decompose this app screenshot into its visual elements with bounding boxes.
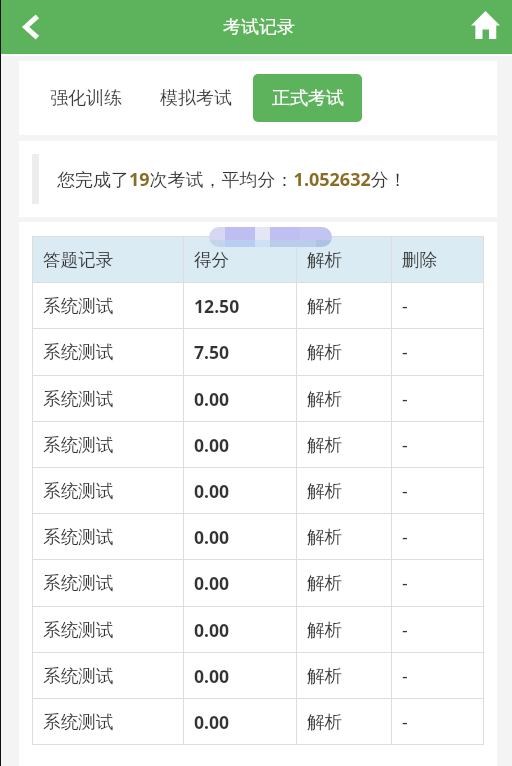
staticText: 解析	[307, 249, 343, 271]
button[interactable]: 模拟考试	[154, 77, 238, 120]
staticText: 12.50	[194, 294, 240, 318]
staticText: 得分	[194, 249, 230, 271]
button[interactable]: 系统测试	[32, 468, 484, 513]
staticText: 0.00	[194, 618, 230, 642]
button[interactable]: 强化训练	[44, 77, 128, 120]
staticText: 您完成了19次考试，平均分：1.052632分！	[57, 167, 407, 192]
staticText: 0.00	[194, 571, 230, 595]
button[interactable]: Back	[4, 0, 58, 54]
button[interactable]: 系统测试	[32, 514, 484, 559]
staticText: 系统测试	[43, 526, 114, 548]
button[interactable]: 系统测试	[32, 607, 484, 652]
staticText: 解析	[307, 295, 343, 317]
staticText: 系统测试	[43, 388, 114, 410]
staticText: 解析	[307, 341, 343, 363]
staticText: 模拟考试	[160, 87, 232, 110]
button[interactable]: 系统测试	[32, 653, 484, 698]
staticText: 解析	[307, 572, 343, 594]
staticText: 强化训练	[50, 87, 122, 110]
staticText: 系统测试	[43, 572, 114, 594]
staticText: -	[402, 294, 408, 318]
staticText: 系统测试	[43, 480, 114, 502]
button[interactable]: 系统测试	[32, 283, 484, 328]
staticText: 0.00	[194, 525, 230, 549]
staticText: 系统测试	[43, 341, 114, 363]
staticText: 系统测试	[43, 665, 114, 687]
button[interactable]: 系统测试	[32, 329, 484, 375]
button[interactable]: 系统测试	[32, 376, 484, 421]
staticText: 解析	[307, 526, 343, 548]
staticText: 0.00	[194, 710, 230, 734]
staticText: 解析	[307, 434, 343, 456]
button[interactable]: Home	[458, 0, 512, 52]
staticText: 解析	[307, 388, 343, 410]
staticText: -	[402, 340, 408, 364]
staticText: 正式考试	[272, 87, 344, 110]
staticText: 系统测试	[43, 711, 114, 733]
staticText: 0.00	[194, 387, 230, 411]
staticText: 答题记录	[43, 249, 114, 271]
staticText: -	[402, 664, 408, 688]
staticText: 系统测试	[43, 619, 114, 641]
staticText: 系统测试	[43, 434, 114, 456]
staticText: -	[402, 387, 408, 411]
staticText: 考试记录	[223, 16, 295, 39]
staticText: 解析	[307, 480, 343, 502]
staticText: -	[402, 571, 408, 595]
staticText: 7.50	[194, 340, 230, 364]
staticText: 0.00	[194, 433, 230, 457]
staticText: -	[402, 618, 408, 642]
staticText: -	[402, 479, 408, 503]
button[interactable]: 系统测试	[32, 699, 484, 744]
staticText: 0.00	[194, 479, 230, 503]
button[interactable]: 系统测试	[32, 422, 484, 467]
staticText: 0.00	[194, 664, 230, 688]
button[interactable]: 系统测试	[32, 560, 484, 606]
staticText: 解析	[307, 619, 343, 641]
staticText: 删除	[402, 249, 438, 271]
staticText: -	[402, 433, 408, 457]
staticText: -	[402, 710, 408, 734]
staticText: 系统测试	[43, 295, 114, 317]
button[interactable]: 正式考试	[253, 74, 362, 122]
staticText: -	[402, 525, 408, 549]
staticText: 解析	[307, 711, 343, 733]
staticText: 解析	[307, 665, 343, 687]
